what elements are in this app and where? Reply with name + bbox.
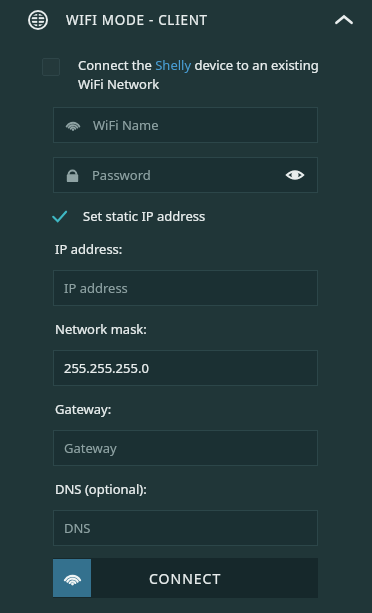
staticText: Connect the Shelly device to an existing… xyxy=(78,56,342,93)
button[interactable]: 255.255.255.0 xyxy=(53,350,318,386)
button[interactable]: WiFi Name xyxy=(53,107,318,143)
staticText: 255.255.255.0 xyxy=(64,359,149,377)
button[interactable]: IP address xyxy=(53,270,318,306)
button[interactable]: Connect the Shelly device to an existing… xyxy=(42,56,342,93)
staticText: WiFi Name xyxy=(93,116,159,134)
button[interactable]: DNS xyxy=(53,510,318,546)
staticText: WIFI MODE - CLIENT xyxy=(66,11,208,29)
staticText: Gateway xyxy=(64,439,117,457)
staticText: Gateway: xyxy=(55,400,112,418)
staticText: IP address xyxy=(64,279,128,297)
staticText: Network mask: xyxy=(55,320,147,338)
button[interactable]: Collapse xyxy=(322,0,366,40)
button[interactable]: Network xyxy=(0,0,372,40)
button[interactable]: Gateway xyxy=(53,430,318,466)
staticText: CONNECT xyxy=(149,569,222,588)
button[interactable]: Set static IP address xyxy=(52,207,372,225)
button[interactable]: Password xyxy=(53,157,318,193)
staticText: Set static IP address xyxy=(83,207,206,225)
staticText: Password xyxy=(92,166,151,184)
staticText: IP address: xyxy=(55,240,123,258)
other: Network xyxy=(28,10,48,30)
button[interactable]: CONNECT xyxy=(53,558,318,598)
staticText: DNS (optional): xyxy=(55,480,147,498)
staticText: DNS xyxy=(64,519,91,537)
